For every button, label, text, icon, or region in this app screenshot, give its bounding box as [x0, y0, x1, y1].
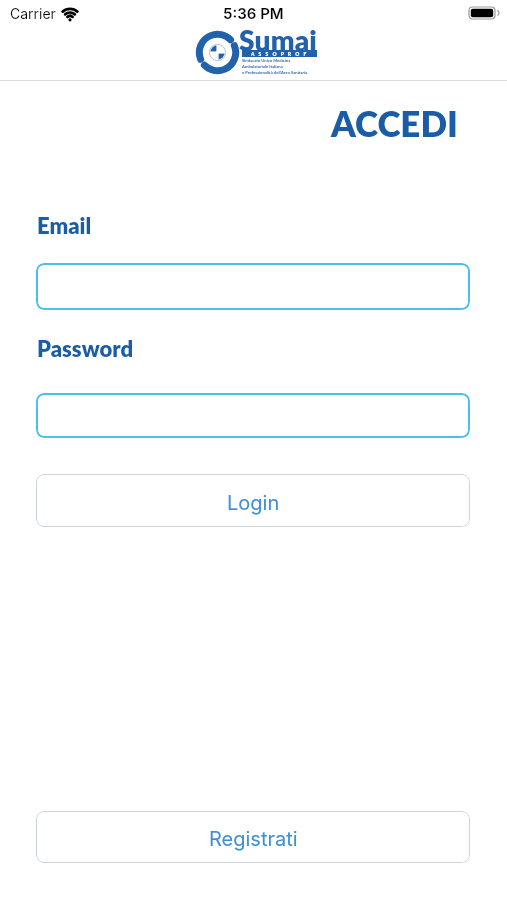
button[interactable]: [36, 393, 470, 438]
staticText: Carrier: [10, 5, 56, 22]
button[interactable]: [36, 263, 470, 310]
button[interactable]: Login: [36, 474, 470, 527]
staticText: ACCEDI: [331, 102, 458, 144]
staticText: 5:36 PM: [223, 4, 284, 22]
staticText: Sindacato Unico Medicina: [242, 58, 291, 63]
staticText: Login: [227, 491, 280, 515]
staticText: Password: [37, 335, 134, 361]
staticText: A S S O P R O F: [251, 51, 308, 57]
staticText: Ambulatoriale Italiana: [242, 64, 283, 69]
staticText: e Professionalità dell'Area Sanitaria: [242, 70, 308, 75]
staticText: Email: [37, 212, 92, 238]
staticText: Sumai: [239, 23, 318, 57]
button[interactable]: Registrati: [36, 811, 470, 863]
staticText: Registrati: [209, 827, 298, 851]
